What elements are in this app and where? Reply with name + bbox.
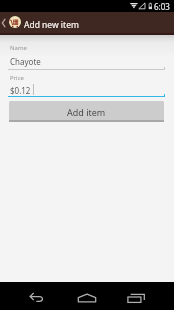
staticText: Chayote xyxy=(10,56,41,67)
button[interactable]: Add item xyxy=(9,101,164,122)
staticText: Add new item xyxy=(24,19,79,31)
button[interactable]: Recent apps xyxy=(116,282,160,310)
staticText: 6:03 xyxy=(154,1,170,12)
button[interactable]: Navigate up xyxy=(0,12,9,33)
staticText: Name xyxy=(10,44,27,52)
staticText: $0.12 xyxy=(10,85,31,96)
button[interactable]: Back xyxy=(14,282,58,310)
staticText: Price xyxy=(10,74,24,82)
staticText: Add item xyxy=(67,106,106,118)
button[interactable]: Home xyxy=(65,282,109,310)
